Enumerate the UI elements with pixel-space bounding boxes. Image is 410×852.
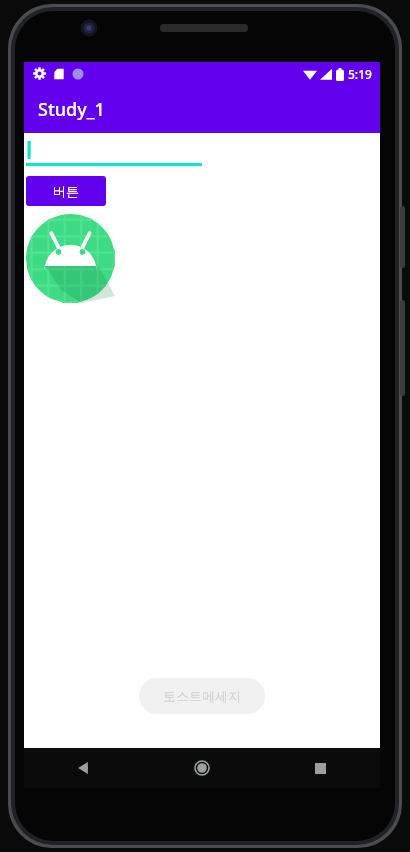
staticText: Study_1 bbox=[38, 97, 105, 122]
button[interactable]: Recent apps bbox=[261, 748, 380, 788]
button[interactable]: Home bbox=[142, 748, 261, 788]
staticText: 5:19 bbox=[348, 66, 372, 82]
button[interactable]: Android logo bbox=[26, 214, 115, 303]
button[interactable] bbox=[26, 138, 202, 172]
staticText: 토스트메세지 bbox=[163, 688, 241, 704]
staticText: 버튼 bbox=[53, 183, 79, 199]
button[interactable]: 버튼 bbox=[26, 176, 106, 206]
button[interactable]: Back bbox=[24, 748, 142, 788]
